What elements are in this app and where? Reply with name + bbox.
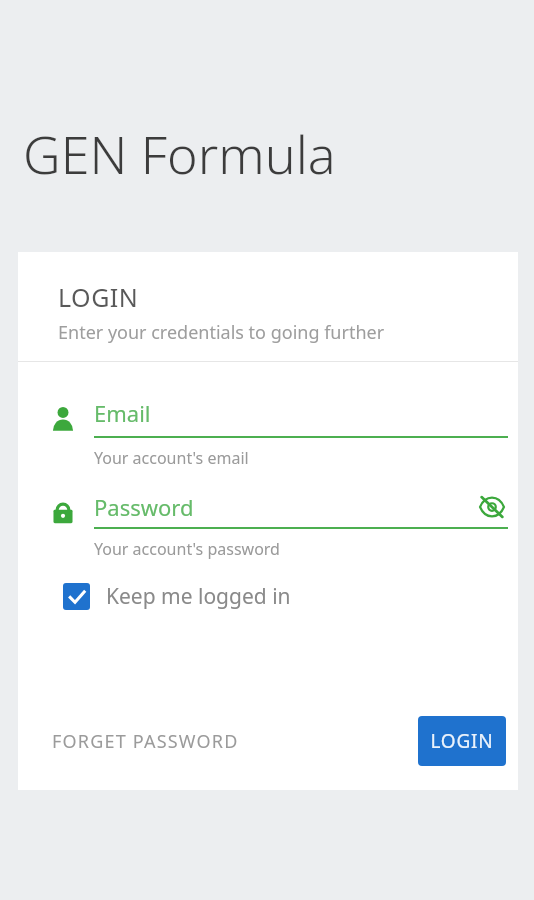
staticText: Enter your credentials to going further [58, 320, 385, 345]
staticText: Email [94, 398, 151, 428]
button[interactable]: FORGET PASSWORD [44, 719, 247, 764]
staticText: GEN Formula [23, 118, 336, 189]
button[interactable]: LOGIN [418, 716, 506, 766]
staticText: LOGIN [430, 728, 494, 754]
staticText: FORGET PASSWORD [52, 729, 239, 754]
button[interactable]: Show password [476, 491, 508, 523]
button[interactable]: Keep me logged in [63, 582, 291, 611]
staticText: LOGIN [58, 280, 139, 314]
button[interactable]: Password [46, 491, 508, 560]
staticText: Keep me logged in [106, 582, 291, 611]
staticText: Your account's email [94, 447, 249, 469]
button[interactable]: Email [46, 398, 508, 469]
staticText: Password [94, 492, 476, 522]
staticText: Your account's password [94, 538, 280, 560]
